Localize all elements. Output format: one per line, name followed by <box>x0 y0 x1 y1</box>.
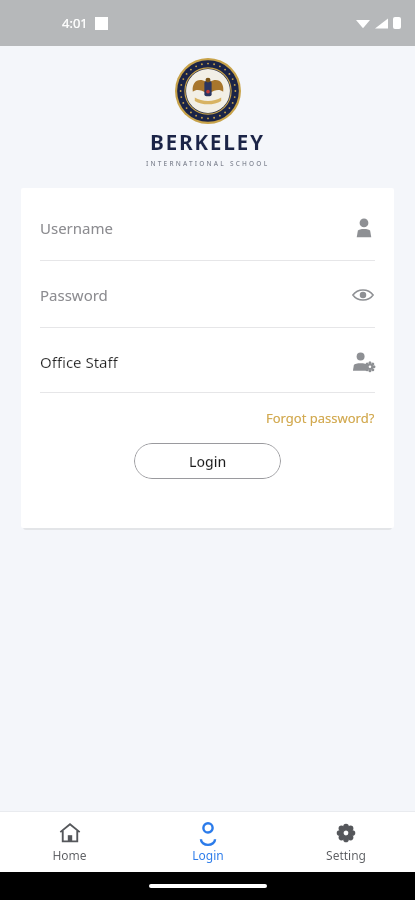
button[interactable]: Username <box>40 214 375 242</box>
other: Select role <box>351 350 375 374</box>
other: Show password <box>351 283 375 307</box>
button[interactable]: Office Staff <box>40 348 375 376</box>
button[interactable]: Forgot password? <box>266 405 375 431</box>
other: Username <box>353 217 375 239</box>
staticText: BERKELEY <box>150 128 265 157</box>
staticText: Home <box>52 847 87 863</box>
button[interactable]: Password <box>40 281 375 309</box>
button[interactable]: Setting <box>277 816 415 869</box>
staticText: 4:01 <box>62 14 88 32</box>
button[interactable]: Login <box>134 443 281 479</box>
staticText: Password <box>40 285 351 305</box>
staticText: INTERNATIONAL SCHOOL <box>146 159 270 168</box>
staticText: Setting <box>326 847 366 863</box>
staticText: Username <box>40 218 353 238</box>
button[interactable]: Home <box>0 816 139 869</box>
staticText: Login <box>192 847 224 863</box>
button[interactable]: Login <box>139 816 277 869</box>
staticText: Office Staff <box>40 352 351 372</box>
staticText: Login <box>189 452 227 471</box>
staticText: Forgot password? <box>266 409 375 427</box>
